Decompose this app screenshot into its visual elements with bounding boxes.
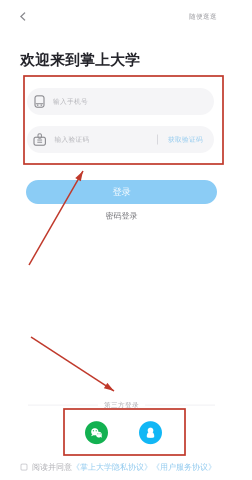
button[interactable]: 《用户服务协议》 bbox=[152, 462, 216, 472]
button[interactable]: 获取验证码 bbox=[158, 126, 214, 153]
button[interactable]: 登录 bbox=[26, 180, 217, 204]
staticText: 《用户服务协议》 bbox=[152, 462, 216, 472]
staticText: 阅读并同意 bbox=[32, 462, 72, 472]
button[interactable]: Agree to terms bbox=[21, 464, 32, 470]
button[interactable]: Sign in with WeChat bbox=[85, 421, 108, 444]
staticText: 获取验证码 bbox=[168, 135, 203, 144]
staticText: 密码登录 bbox=[105, 211, 137, 221]
staticText: 随便逛逛 bbox=[189, 12, 217, 21]
staticText: 《掌上大学隐私协议》 bbox=[72, 462, 152, 472]
staticText: 欢迎来到掌上大学 bbox=[20, 51, 140, 69]
staticText: 登录 bbox=[112, 186, 130, 198]
staticText: 输入手机号 bbox=[53, 97, 88, 106]
button[interactable]: 随便逛逛 bbox=[184, 0, 222, 32]
staticText: 输入验证码 bbox=[54, 135, 89, 144]
staticText: 第三方登录 bbox=[104, 401, 139, 409]
button[interactable]: Back bbox=[10, 0, 36, 32]
button[interactable]: 密码登录 bbox=[99, 208, 143, 224]
button[interactable]: Sign in with QQ bbox=[139, 421, 162, 444]
button[interactable]: 《掌上大学隐私协议》 bbox=[72, 462, 152, 472]
